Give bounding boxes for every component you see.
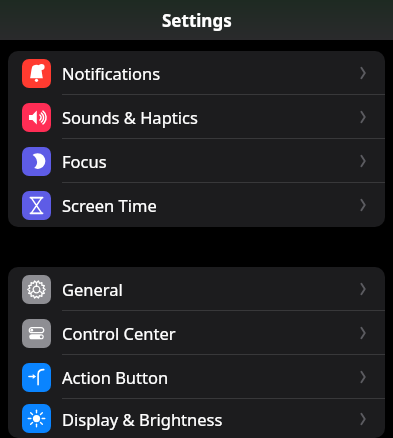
staticText: Display & Brightness: [62, 408, 353, 430]
button[interactable]: Focus: [8, 139, 385, 183]
button[interactable]: Sounds & Haptics: [8, 95, 385, 139]
button[interactable]: Action Button: [8, 355, 385, 399]
button[interactable]: General: [8, 267, 385, 311]
button[interactable]: Notifications: [8, 51, 385, 95]
button[interactable]: Control Center: [8, 311, 385, 355]
staticText: Sounds & Haptics: [62, 106, 353, 128]
staticText: Control Center: [62, 322, 353, 344]
staticText: General: [62, 278, 353, 300]
staticText: Notifications: [62, 62, 353, 84]
staticText: Settings: [162, 9, 232, 32]
staticText: Screen Time: [62, 194, 353, 216]
button[interactable]: Screen Time: [8, 183, 385, 227]
button[interactable]: Display & Brightness: [8, 399, 385, 438]
staticText: Focus: [62, 150, 353, 172]
staticText: Action Button: [62, 366, 353, 388]
